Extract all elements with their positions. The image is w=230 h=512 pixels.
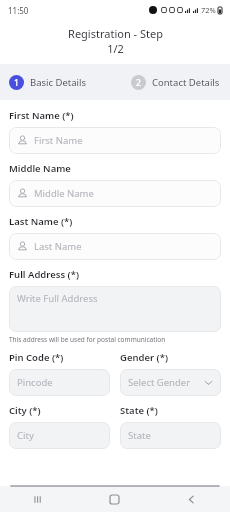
button[interactable]: First Name [9, 127, 221, 154]
staticText: First Name (*) [9, 109, 74, 122]
button[interactable]: Pincode [9, 369, 110, 396]
staticText: State (*) [120, 404, 158, 417]
staticText: First Name [34, 134, 83, 147]
staticText: Registration - Step [68, 26, 163, 41]
staticText: 11:50 [8, 5, 29, 16]
staticText: Last Name (*) [9, 215, 73, 228]
button[interactable]: 2 [131, 75, 220, 90]
staticText: Gender (*) [120, 351, 168, 364]
button[interactable]: Write Full Address [9, 286, 221, 332]
staticText: 2 [136, 77, 141, 89]
button[interactable]: City [9, 422, 110, 449]
staticText: 1 [14, 77, 19, 89]
staticText: City [17, 429, 102, 442]
staticText: This address will be used for postal com… [9, 335, 166, 344]
button[interactable]: Recent apps [0, 486, 76, 512]
button[interactable]: Last Name [9, 233, 221, 260]
staticText: Select Gender [128, 376, 204, 389]
staticText: 72% [201, 5, 216, 15]
staticText: City (*) [9, 404, 41, 417]
staticText: State [128, 429, 213, 442]
button[interactable]: Home [76, 486, 153, 512]
staticText: Contact Details [152, 76, 220, 89]
button[interactable]: Middle Name [9, 180, 221, 207]
staticText: Middle Name [9, 162, 71, 175]
staticText: Last Name [34, 240, 82, 253]
staticText: Pincode [17, 376, 102, 389]
staticText: Write Full Address [17, 292, 98, 305]
button[interactable]: Back [153, 486, 230, 512]
button[interactable]: Select Gender [120, 369, 221, 396]
staticText: Basic Details [30, 76, 87, 89]
staticText: Middle Name [34, 187, 94, 200]
staticText: 1/2 [107, 41, 124, 56]
button[interactable]: State [120, 422, 221, 449]
staticText: Pin Code (*) [9, 351, 64, 364]
staticText: Full Address (*) [9, 268, 79, 281]
button[interactable]: 1 [9, 75, 87, 90]
